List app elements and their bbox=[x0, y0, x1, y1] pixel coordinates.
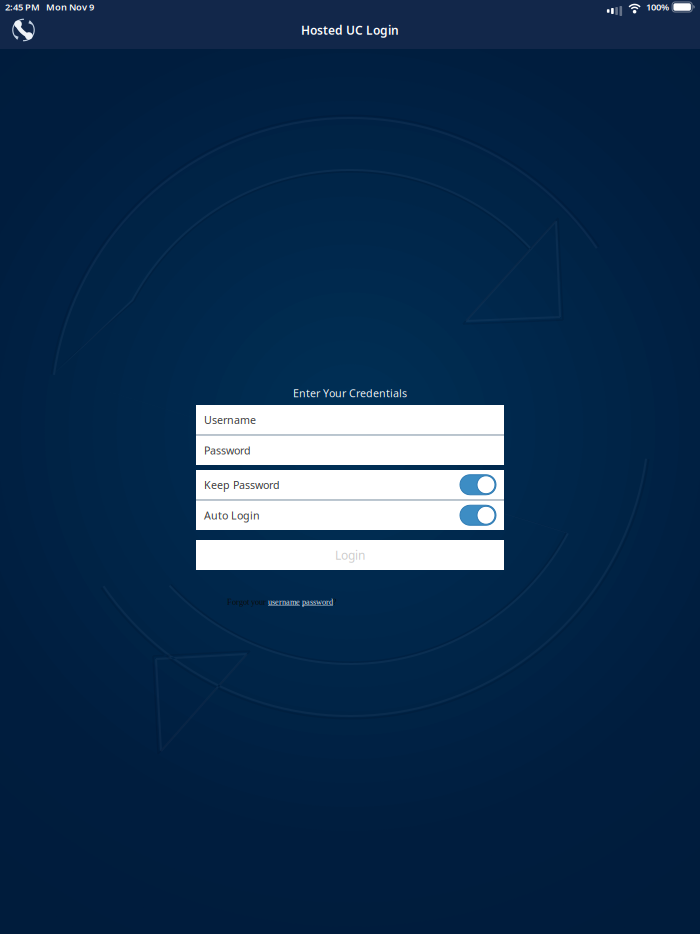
staticText: username bbox=[268, 597, 300, 607]
button[interactable]: Reconnect bbox=[0, 14, 44, 46]
staticText: password bbox=[302, 597, 333, 607]
staticText: ? bbox=[333, 597, 337, 607]
staticText: Forgot your bbox=[227, 597, 268, 607]
button[interactable]: Auto Login bbox=[196, 500, 504, 530]
button[interactable]: Keep Password bbox=[196, 470, 504, 499]
staticText: Auto Login bbox=[204, 508, 260, 522]
staticText: 2:45 PM bbox=[5, 1, 40, 13]
button[interactable]: username bbox=[268, 597, 300, 607]
staticText: Enter Your Credentials bbox=[293, 386, 407, 400]
staticText: Password bbox=[204, 443, 251, 457]
button[interactable]: Username bbox=[196, 405, 504, 434]
button[interactable]: Login bbox=[196, 540, 504, 570]
staticText: Username bbox=[204, 413, 256, 427]
staticText: Mon Nov 9 bbox=[40, 1, 94, 13]
staticText: 100% bbox=[646, 1, 669, 13]
button[interactable]: Password bbox=[196, 435, 504, 465]
button[interactable]: password bbox=[302, 597, 333, 607]
staticText: Keep Password bbox=[204, 478, 280, 492]
staticText: Hosted UC Login bbox=[301, 22, 399, 38]
staticText: Login bbox=[335, 547, 365, 563]
